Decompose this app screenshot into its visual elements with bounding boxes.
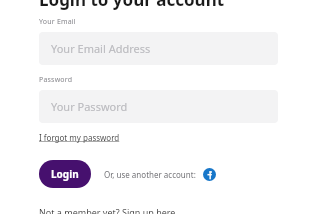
button[interactable]: Sign up here — [122, 206, 176, 214]
staticText: Login — [51, 167, 79, 181]
staticText: Not a member yet? — [39, 206, 122, 214]
staticText: Password — [39, 75, 73, 85]
staticText: Or, use another account: — [104, 169, 196, 180]
button[interactable]: I forgot my password — [39, 131, 120, 144]
staticText: Sign up here — [122, 206, 176, 214]
staticText: Login to your account — [39, 0, 225, 11]
staticText: I forgot my password — [39, 132, 120, 143]
staticText: Your Email — [39, 17, 76, 27]
button[interactable]: Login — [39, 160, 91, 188]
button[interactable]: Your Password — [39, 90, 278, 123]
staticText: Your Password — [51, 99, 128, 114]
button[interactable]: Your Email Address — [39, 32, 278, 65]
staticText: Your Email Address — [51, 41, 151, 56]
button[interactable]: Sign in with Facebook — [203, 168, 216, 181]
